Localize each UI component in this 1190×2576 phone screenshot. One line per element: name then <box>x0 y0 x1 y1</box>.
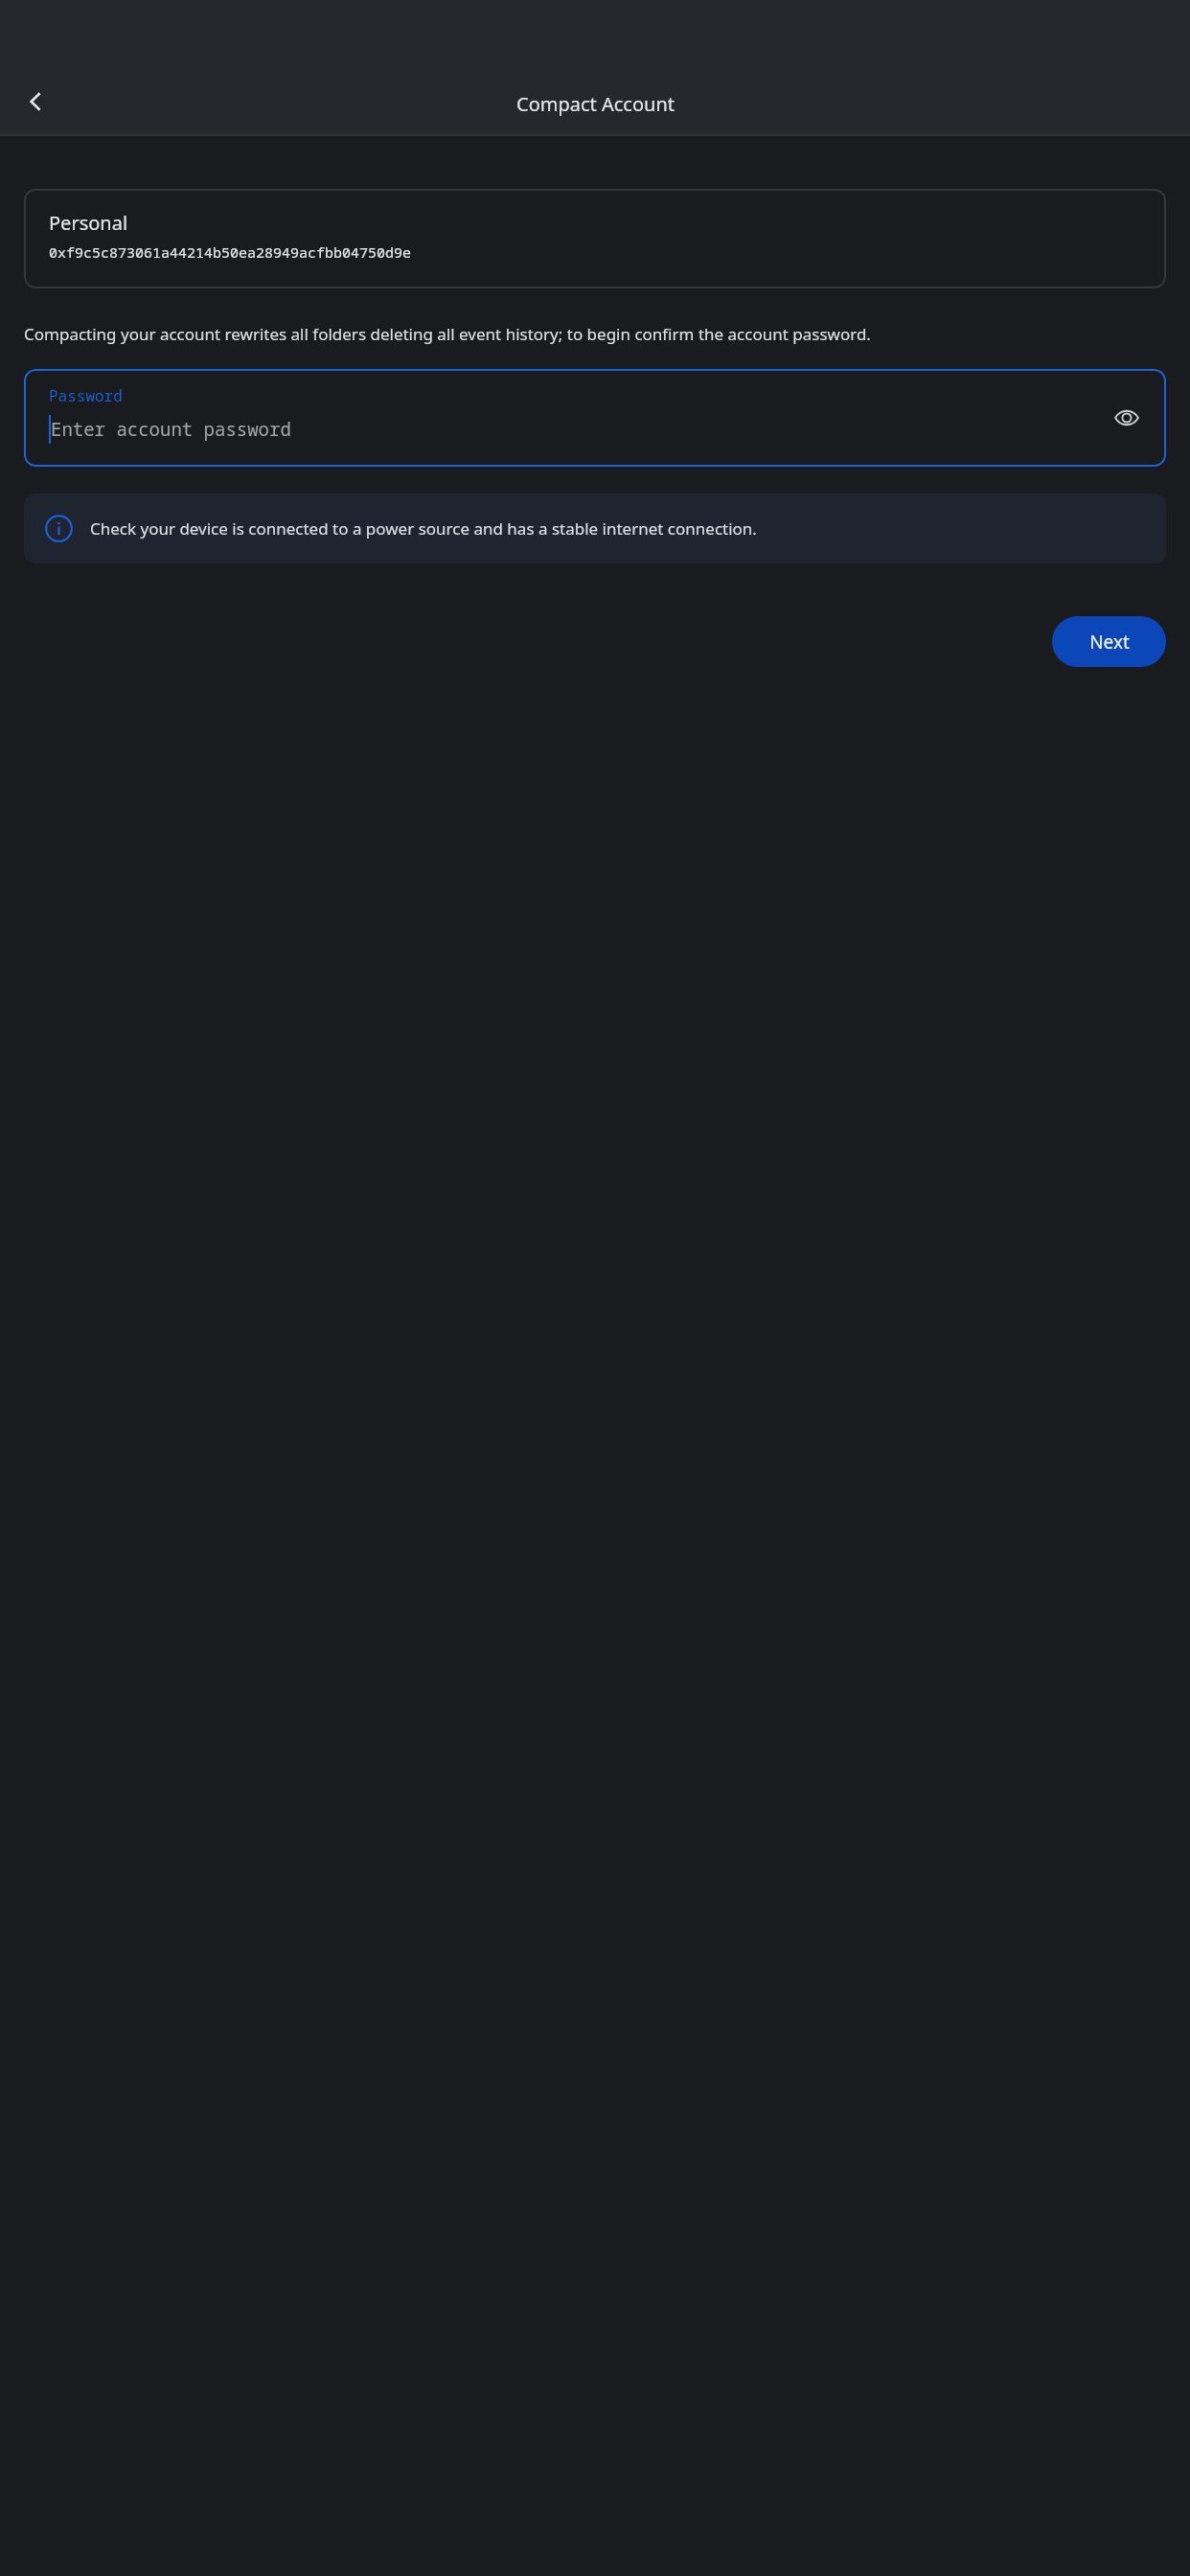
button[interactable]: Password <box>24 369 1166 467</box>
button[interactable]: Next <box>1052 616 1166 667</box>
button[interactable]: Back <box>9 75 62 128</box>
staticText: Password <box>49 385 123 406</box>
staticText: Enter account password <box>51 417 291 442</box>
button[interactable]: Check your device is connected to a powe… <box>24 494 1166 563</box>
staticText: Compact Account <box>516 91 675 117</box>
staticText: Compacting your account rewrites all fol… <box>24 323 871 345</box>
button[interactable]: Personal <box>24 189 1166 288</box>
staticText: 0xf9c5c873061a44214b50ea28949acfbb04750d… <box>49 242 412 262</box>
staticText: Personal <box>49 210 128 236</box>
button[interactable]: Show password <box>1101 392 1153 444</box>
staticText: Next <box>1089 630 1130 655</box>
staticText: Check your device is connected to a powe… <box>90 517 757 540</box>
